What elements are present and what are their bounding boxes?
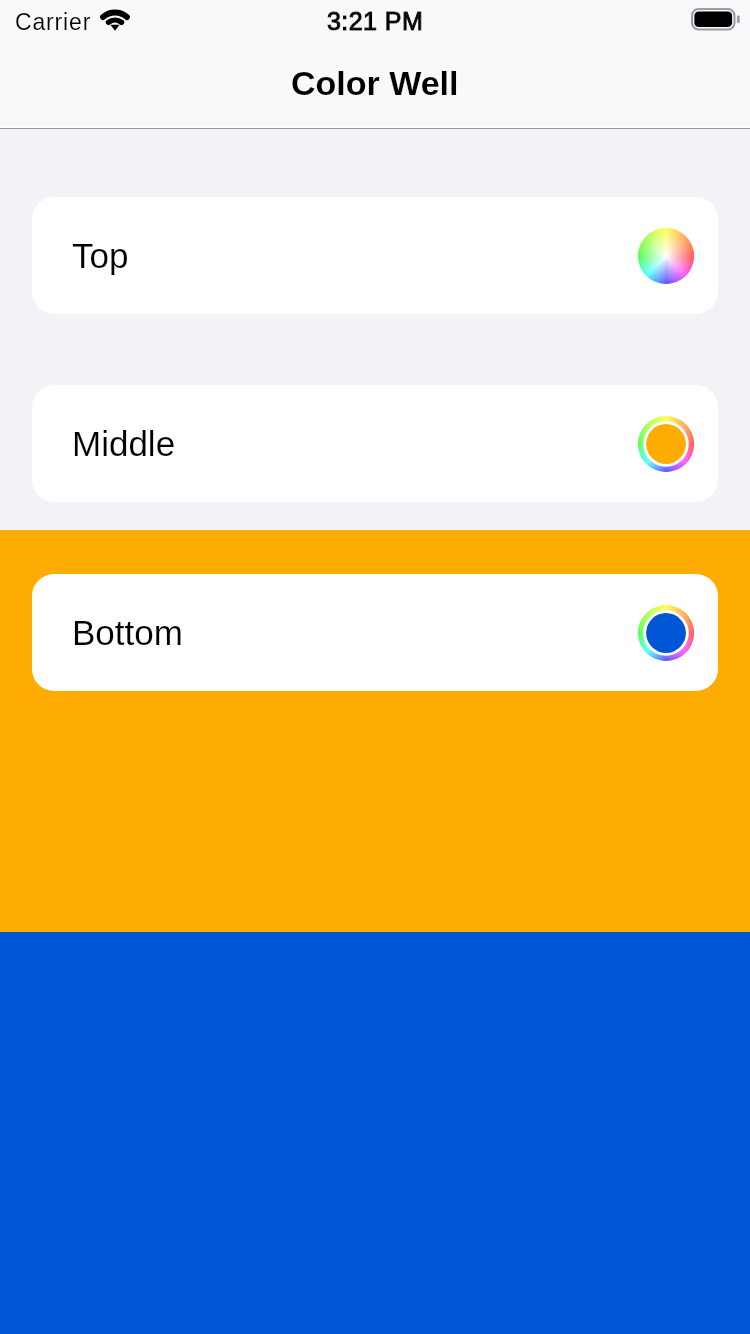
staticText: 3:21 PM bbox=[327, 7, 424, 35]
button[interactable]: Top bbox=[32, 197, 718, 314]
staticText: Carrier bbox=[15, 9, 92, 35]
button[interactable]: Top colour well bbox=[638, 228, 694, 284]
staticText: Middle bbox=[72, 424, 176, 463]
button[interactable]: Middle colour well bbox=[638, 416, 694, 472]
button[interactable]: Bottom bbox=[32, 574, 718, 691]
other: Battery full bbox=[691, 8, 741, 32]
staticText: 3:21 PM bbox=[327, 7, 424, 35]
staticText: Color Well bbox=[291, 64, 459, 102]
button[interactable]: Bottom colour well bbox=[638, 605, 694, 661]
staticText: Top bbox=[72, 236, 129, 275]
staticText: Bottom bbox=[72, 613, 183, 652]
button[interactable]: Middle bbox=[32, 385, 718, 502]
other: Wi-Fi signal bbox=[97, 8, 133, 31]
